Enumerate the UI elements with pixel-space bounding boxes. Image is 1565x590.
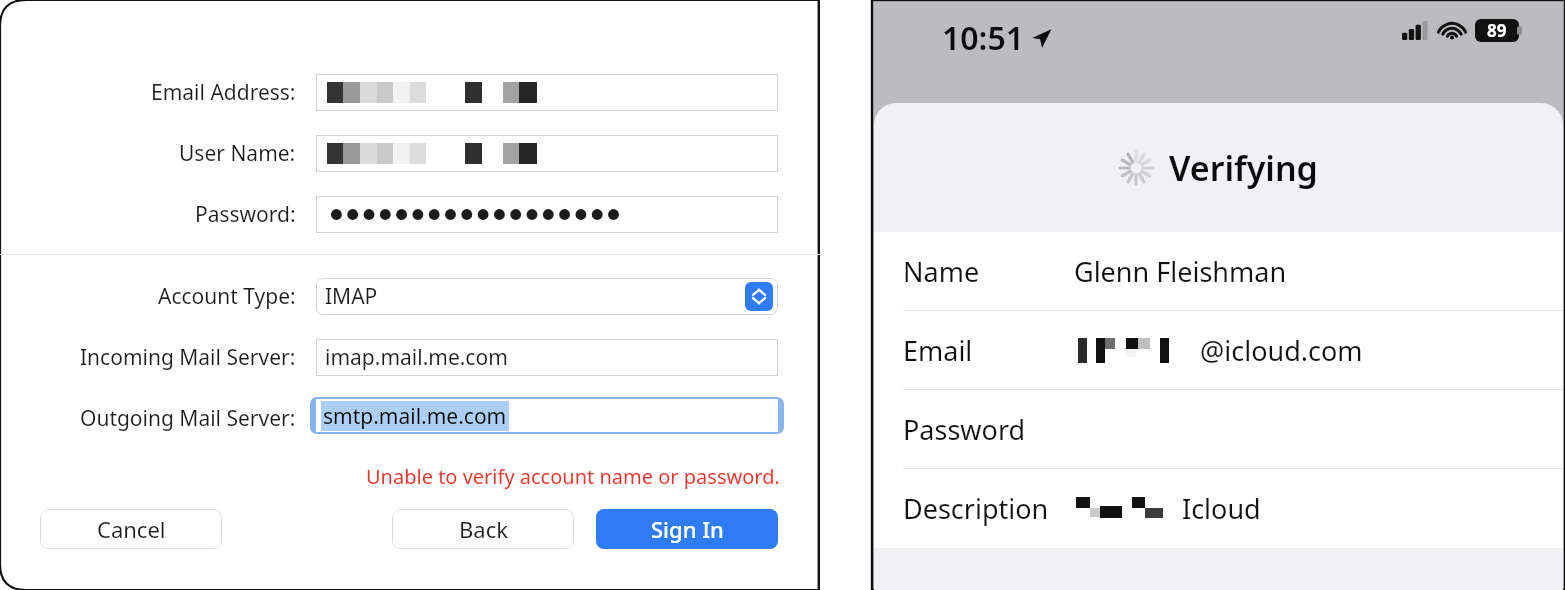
button[interactable]: imap.mail.me.com [316, 339, 778, 376]
staticText: Password [903, 411, 1026, 448]
staticText: Unable to verify account name or passwor… [366, 463, 780, 490]
staticText: Glenn Fleishman [1074, 253, 1287, 290]
button[interactable]: IMAP [316, 278, 778, 315]
other: Choose account type [745, 282, 773, 311]
staticText: 10:51 [942, 16, 1025, 60]
staticText: Password: [195, 200, 296, 229]
staticText: Incoming Mail Server: [80, 343, 296, 372]
button[interactable]: smtp.mail.me.com [310, 397, 784, 434]
button[interactable]: Sign In [596, 509, 778, 549]
staticText: IMAP [325, 282, 378, 311]
staticText: Email Address: [151, 78, 296, 107]
staticText: Sign In [651, 514, 724, 544]
staticText: 89 [1487, 19, 1507, 42]
staticText: Description [903, 490, 1049, 527]
staticText: Name [903, 253, 980, 290]
button[interactable]: Back [392, 509, 574, 549]
staticText: @icloud.com [1200, 332, 1363, 369]
button[interactable]: Email [874, 311, 1563, 389]
button[interactable] [316, 135, 778, 172]
button[interactable]: Name [874, 232, 1563, 310]
staticText: User Name: [179, 139, 296, 168]
staticText: Icloud [1182, 490, 1261, 527]
staticText: Account Type: [158, 282, 296, 311]
staticText: Outgoing Mail Server: [80, 404, 296, 433]
staticText: Back [459, 514, 508, 544]
staticText: imap.mail.me.com [325, 343, 508, 372]
button[interactable] [316, 196, 778, 233]
button[interactable]: Password [874, 390, 1563, 468]
button[interactable]: Description [874, 469, 1563, 547]
staticText: Cancel [97, 514, 166, 544]
button[interactable] [316, 74, 778, 111]
staticText: Verifying [1169, 145, 1318, 191]
staticText: Email [903, 332, 973, 369]
button[interactable]: Cancel [40, 509, 222, 549]
staticText: smtp.mail.me.com [323, 402, 507, 431]
